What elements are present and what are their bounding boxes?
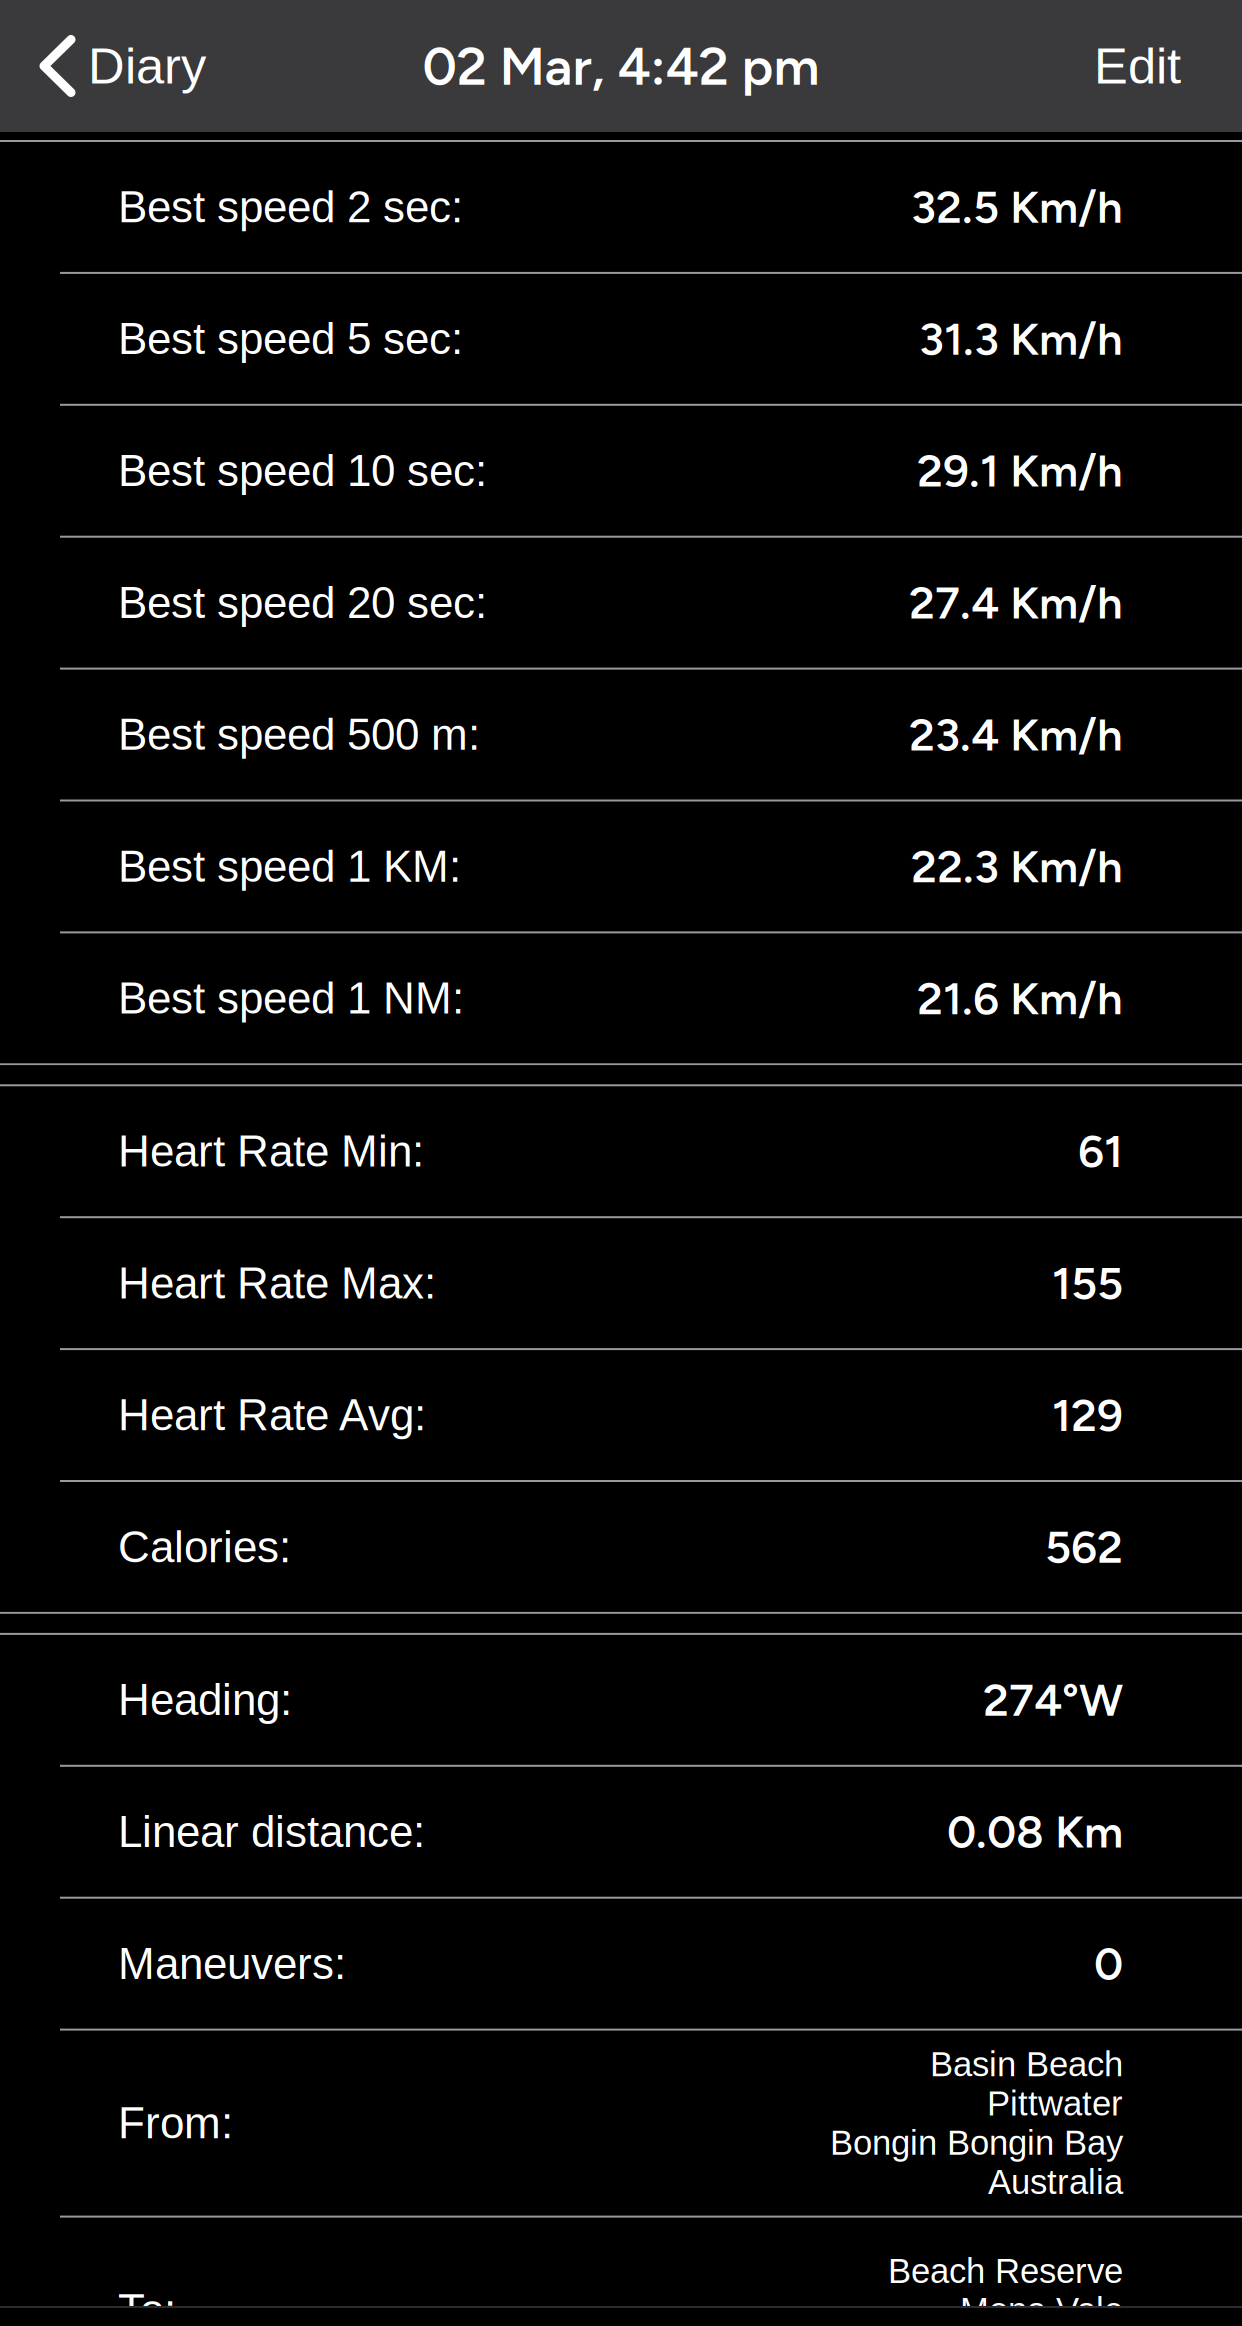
- staticText: From:: [118, 2098, 233, 2148]
- staticText: Basin Beach: [930, 2045, 1123, 2084]
- staticText: Mona Vale: [960, 2291, 1123, 2326]
- button[interactable]: Heart Rate Max:: [0, 1218, 1242, 1348]
- staticText: 274°W: [983, 1673, 1123, 1727]
- button[interactable]: To:: [0, 2218, 1242, 2326]
- button[interactable]: Best speed 5 sec:: [0, 274, 1242, 404]
- button[interactable]: Best speed 1 NM:: [0, 933, 1242, 1063]
- staticText: Best speed 1 KM:: [118, 842, 461, 891]
- staticText: Edit: [1094, 38, 1181, 94]
- staticText: 562: [1045, 1520, 1123, 1574]
- staticText: 02 Mar, 4:42 pm: [422, 34, 819, 98]
- staticText: Maneuvers:: [118, 1939, 346, 1988]
- staticText: Diary: [88, 38, 206, 94]
- staticText: Heart Rate Avg:: [118, 1390, 426, 1440]
- staticText: Best speed 5 sec:: [118, 314, 463, 363]
- staticText: 0.08 Km: [947, 1805, 1123, 1859]
- staticText: 0: [1094, 1936, 1123, 1991]
- button[interactable]: Best speed 20 sec:: [0, 538, 1242, 668]
- button[interactable]: Linear distance:: [0, 1767, 1242, 1897]
- button[interactable]: Heading:: [0, 1635, 1242, 1765]
- staticText: 155: [1052, 1256, 1123, 1310]
- staticText: 22.3 Km/h: [911, 839, 1123, 894]
- staticText: Best speed 20 sec:: [118, 578, 487, 627]
- staticText: Calories:: [118, 1522, 291, 1572]
- staticText: Heart Rate Max:: [118, 1259, 436, 1308]
- staticText: 23.4 Km/h: [909, 707, 1123, 762]
- staticText: Best speed 500 m:: [118, 710, 480, 759]
- staticText: Bongin Bongin Bay: [830, 2123, 1123, 2162]
- button[interactable]: Best speed 10 sec:: [0, 406, 1242, 536]
- button[interactable]: From:: [0, 2031, 1242, 2216]
- staticText: 29.1 Km/h: [917, 444, 1123, 498]
- staticText: Linear distance:: [118, 1807, 425, 1856]
- staticText: To:: [118, 2285, 176, 2326]
- staticText: Best speed 1 NM:: [118, 974, 464, 1023]
- staticText: Heart Rate Min:: [118, 1127, 424, 1176]
- button[interactable]: Heart Rate Avg:: [0, 1350, 1242, 1480]
- button[interactable]: Best speed 1 KM:: [0, 801, 1242, 931]
- staticText: Best speed 2 sec:: [118, 182, 463, 232]
- staticText: 129: [1052, 1388, 1123, 1442]
- staticText: Best speed 10 sec:: [118, 446, 487, 495]
- button[interactable]: Edit: [1064, 0, 1242, 132]
- button[interactable]: Heart Rate Min:: [0, 1086, 1242, 1216]
- staticText: 27.4 Km/h: [909, 575, 1123, 630]
- button[interactable]: Maneuvers:: [0, 1899, 1242, 2029]
- button[interactable]: Back to Diary: [0, 0, 230, 132]
- staticText: 32.5 Km/h: [911, 180, 1123, 234]
- staticText: 61: [1078, 1124, 1123, 1178]
- staticText: 21.6 Km/h: [917, 971, 1123, 1026]
- button[interactable]: Best speed 2 sec:: [0, 142, 1242, 272]
- staticText: 31.3 Km/h: [919, 312, 1123, 366]
- staticText: Beach Reserve: [888, 2251, 1123, 2290]
- staticText: Australia: [988, 2163, 1123, 2201]
- staticText: Heading:: [118, 1675, 292, 1724]
- button[interactable]: Best speed 500 m:: [0, 670, 1242, 799]
- button[interactable]: Calories:: [0, 1482, 1242, 1612]
- staticText: Pittwater: [987, 2084, 1123, 2123]
